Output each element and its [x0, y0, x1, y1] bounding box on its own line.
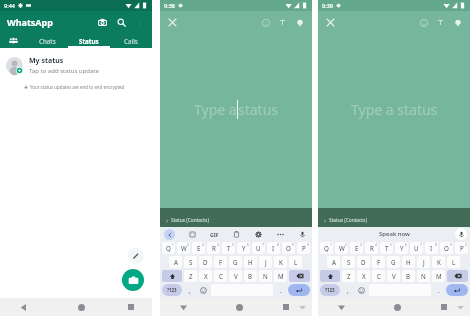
button[interactable]: E	[350, 242, 363, 254]
button[interactable]: Shift	[162, 270, 182, 282]
button[interactable]: Text style	[434, 16, 447, 29]
button[interactable]: R	[207, 242, 220, 254]
button[interactable]: A	[169, 256, 182, 268]
button[interactable]: C	[214, 270, 227, 282]
button[interactable]: B	[402, 270, 415, 282]
button[interactable]: L	[447, 256, 460, 268]
button[interactable]: Backspace	[289, 270, 310, 282]
button[interactable]: Chats	[26, 33, 68, 48]
button[interactable]: Z	[342, 270, 355, 282]
staticText: 4	[217, 243, 219, 247]
button[interactable]: S	[342, 256, 355, 268]
button[interactable]: K	[274, 256, 287, 268]
button[interactable]: H	[244, 256, 257, 268]
button[interactable]: More options	[132, 15, 147, 30]
button[interactable]: I	[425, 242, 438, 254]
staticText: Q	[324, 244, 329, 252]
button[interactable]: D	[199, 256, 212, 268]
staticText: .	[280, 286, 282, 294]
button[interactable]: Q	[162, 242, 175, 254]
button[interactable]: Background colour	[451, 16, 464, 29]
button[interactable]: Stop voice input	[455, 228, 467, 240]
button[interactable]: W	[335, 242, 348, 254]
button[interactable]: Q	[320, 242, 333, 254]
button[interactable]: Enter	[446, 284, 468, 296]
button[interactable]: More	[275, 229, 286, 240]
button[interactable]: Y	[237, 242, 250, 254]
button[interactable]: Emoji	[355, 284, 367, 296]
button[interactable]: M	[432, 270, 445, 282]
button[interactable]: Previous	[164, 229, 175, 240]
button[interactable]: G	[229, 256, 242, 268]
button[interactable]: L	[289, 256, 302, 268]
button[interactable]: U	[410, 242, 423, 254]
button[interactable]: Close	[324, 16, 337, 29]
button[interactable]: S	[184, 256, 197, 268]
button[interactable]: O	[282, 242, 295, 254]
button[interactable]: V	[229, 270, 242, 282]
button[interactable]: Camera	[95, 15, 110, 30]
button[interactable]: Voice input	[297, 229, 308, 240]
button[interactable]: Stickers	[187, 229, 198, 240]
button[interactable]: Emoji	[197, 284, 209, 296]
button[interactable]: Clipboard	[231, 229, 242, 240]
button[interactable]: J	[259, 256, 272, 268]
button[interactable]: F	[372, 256, 385, 268]
button[interactable]: D	[357, 256, 370, 268]
button[interactable]: Calls	[110, 33, 152, 48]
button[interactable]: W	[177, 242, 190, 254]
button[interactable]: M	[274, 270, 287, 282]
button[interactable]: Shift	[320, 270, 340, 282]
button[interactable]: C	[372, 270, 385, 282]
button[interactable]: I	[267, 242, 280, 254]
button[interactable]: P	[297, 242, 310, 254]
button[interactable]: E	[192, 242, 205, 254]
button[interactable]: X	[199, 270, 212, 282]
button[interactable]: Background colour	[293, 16, 306, 29]
button[interactable]: U	[252, 242, 265, 254]
staticText: W	[339, 244, 345, 252]
button[interactable]: Backspace	[447, 270, 468, 282]
button[interactable]: Settings	[253, 229, 264, 240]
button[interactable]: Search	[114, 15, 129, 30]
button[interactable]: J	[417, 256, 430, 268]
button[interactable]: Y	[395, 242, 408, 254]
button[interactable]: ?123	[320, 284, 340, 296]
button[interactable]: Write status	[128, 248, 144, 264]
button[interactable]: T	[380, 242, 393, 254]
button[interactable]: Emoji	[259, 16, 272, 29]
button[interactable]: G	[387, 256, 400, 268]
button[interactable]: Community	[0, 33, 26, 48]
button[interactable]: My status	[0, 53, 152, 78]
button[interactable]: ?123	[162, 284, 182, 296]
button[interactable]: .	[275, 284, 286, 296]
staticText: N	[263, 272, 268, 280]
button[interactable]: .	[433, 284, 444, 296]
button[interactable]: R	[365, 242, 378, 254]
button[interactable]: F	[214, 256, 227, 268]
button[interactable]: H	[402, 256, 415, 268]
button[interactable]: T	[222, 242, 235, 254]
button[interactable]: Status	[68, 33, 110, 48]
button[interactable]: X	[357, 270, 370, 282]
button[interactable]: Text style	[276, 16, 289, 29]
button[interactable]: O	[440, 242, 453, 254]
button[interactable]: N	[417, 270, 430, 282]
button[interactable]: ,	[184, 284, 195, 296]
button[interactable]: ,	[342, 284, 353, 296]
button[interactable]: Enter	[288, 284, 310, 296]
button[interactable]: Close	[166, 16, 179, 29]
button[interactable]: V	[387, 270, 400, 282]
button[interactable]: Z	[184, 270, 197, 282]
button[interactable]: K	[432, 256, 445, 268]
button[interactable]: B	[244, 270, 257, 282]
button[interactable]: N	[259, 270, 272, 282]
button[interactable]: Emoji	[417, 16, 430, 29]
button[interactable]: P	[455, 242, 468, 254]
button[interactable]: Camera status	[122, 269, 144, 291]
staticText: S	[347, 258, 351, 266]
button[interactable]: A	[327, 256, 340, 268]
button[interactable]: GIF	[209, 230, 220, 239]
